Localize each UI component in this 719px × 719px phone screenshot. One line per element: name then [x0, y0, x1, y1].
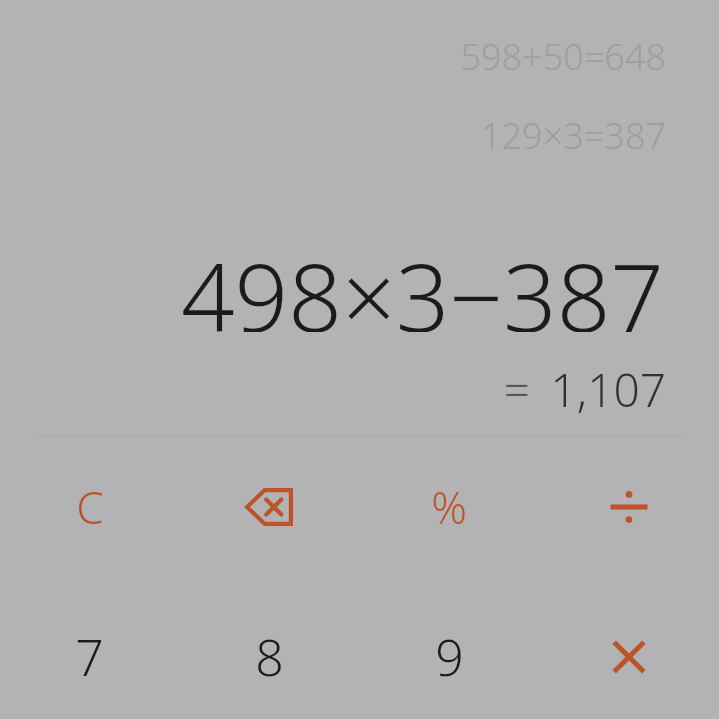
- staticText: %: [431, 477, 467, 537]
- button[interactable]: %: [359, 462, 539, 552]
- staticText: 9: [435, 623, 464, 691]
- staticText: 7: [75, 623, 104, 691]
- staticText: 598+50=648: [460, 32, 666, 81]
- other: Backspace: [245, 488, 293, 526]
- button[interactable]: Divide: [539, 462, 719, 552]
- button[interactable]: Backspace: [179, 462, 359, 552]
- staticText: =: [503, 358, 530, 416]
- button[interactable]: Multiply: [539, 612, 719, 702]
- button[interactable]: 7: [0, 612, 179, 702]
- staticText: 8: [255, 623, 284, 691]
- other: Multiply: [610, 638, 648, 676]
- other: Divide: [608, 486, 650, 528]
- staticText: 129×3=387: [480, 111, 666, 160]
- staticText: C: [76, 477, 104, 537]
- staticText: 498×3−387: [180, 232, 664, 332]
- button[interactable]: C: [0, 462, 179, 552]
- button[interactable]: 9: [359, 612, 539, 702]
- button[interactable]: 8: [179, 612, 359, 702]
- staticText: 1,107: [550, 358, 666, 416]
